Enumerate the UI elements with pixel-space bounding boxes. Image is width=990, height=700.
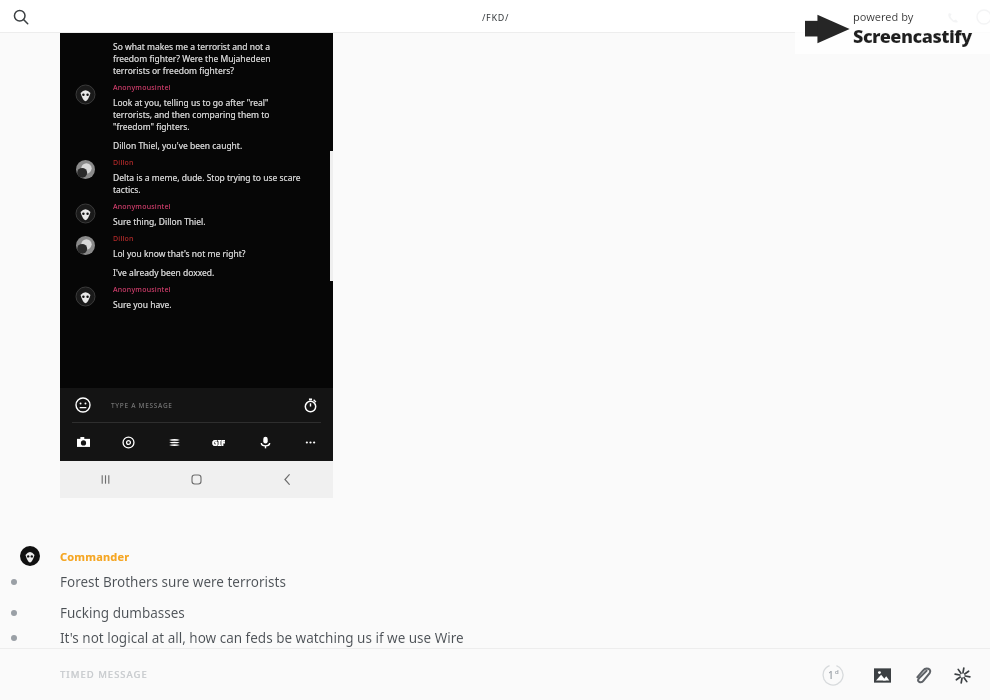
button[interactable]: Fucking dumbasses: [0, 597, 990, 628]
button[interactable]: Home: [151, 461, 242, 498]
staticText: Screencastify: [853, 24, 972, 49]
button[interactable]: Message timer 1 day: [814, 656, 852, 694]
button[interactable]: TIMED MESSAGE: [60, 668, 814, 681]
staticText: Anonymousintel: [113, 83, 171, 93]
staticText: I've already been doxxed.: [113, 267, 215, 279]
button[interactable]: TYPE A MESSAGE: [111, 401, 301, 410]
staticText: Forest Brothers sure were terrorists: [60, 573, 286, 591]
staticText: d: [835, 668, 839, 676]
button[interactable]: Ping: [942, 655, 982, 695]
staticText: So what makes me a terrorist and not a: [113, 41, 271, 53]
button[interactable]: Mention: [117, 431, 139, 453]
staticText: powered by: [853, 9, 914, 24]
staticText: Fucking dumbasses: [60, 604, 185, 622]
staticText: freedom fighter? Were the Mujahedeen: [113, 53, 271, 65]
staticText: terrorists or freedom fighters?: [113, 65, 234, 77]
staticText: GIF: [212, 437, 226, 448]
staticText: 1: [828, 668, 834, 682]
button[interactable]: Commander: [0, 546, 990, 566]
button[interactable]: Search: [8, 4, 34, 30]
button[interactable]: Emoji: [74, 396, 92, 414]
staticText: Dillon: [113, 234, 134, 244]
staticText: Dillon Thiel, you've been caught.: [113, 140, 243, 152]
staticText: Commander: [60, 549, 130, 564]
button[interactable]: Attach file: [902, 655, 942, 695]
button[interactable]: Timer: [301, 396, 319, 414]
button[interactable]: Back: [242, 461, 333, 498]
button[interactable]: Add image: [862, 655, 902, 695]
staticText: Sure you have.: [113, 299, 172, 311]
button[interactable]: More: [299, 431, 321, 453]
button[interactable]: So what makes me a terrorist and not a: [60, 33, 333, 510]
staticText: Anonymousintel: [113, 202, 171, 212]
button[interactable]: Voice message: [254, 431, 276, 453]
staticText: Dillon: [113, 158, 134, 168]
staticText: terrorists, and then comparing them to: [113, 109, 270, 121]
staticText: TIMED MESSAGE: [60, 668, 148, 681]
staticText: /FKD/: [482, 11, 509, 23]
button[interactable]: It's not logical at all, how can feds be…: [0, 628, 990, 648]
staticText: Delta is a meme, dude. Stop trying to us…: [113, 172, 301, 184]
button[interactable]: Camera: [72, 431, 94, 453]
staticText: Sure thing, Dillon Thiel.: [113, 216, 206, 228]
button[interactable]: Stickers: [163, 431, 185, 453]
staticText: TYPE A MESSAGE: [111, 401, 173, 410]
staticText: Lol you know that's not me right?: [113, 248, 246, 260]
staticText: It's not logical at all, how can feds be…: [60, 629, 464, 647]
staticText: tactics.: [113, 184, 141, 196]
button[interactable]: GIF: [208, 431, 230, 453]
button[interactable]: Recents: [60, 461, 151, 498]
staticText: Anonymousintel: [113, 285, 171, 295]
staticText: "freedom" fighters.: [113, 121, 190, 133]
staticText: Look at you, telling us to go after "rea…: [113, 97, 269, 109]
button[interactable]: Forest Brothers sure were terrorists: [0, 566, 990, 597]
